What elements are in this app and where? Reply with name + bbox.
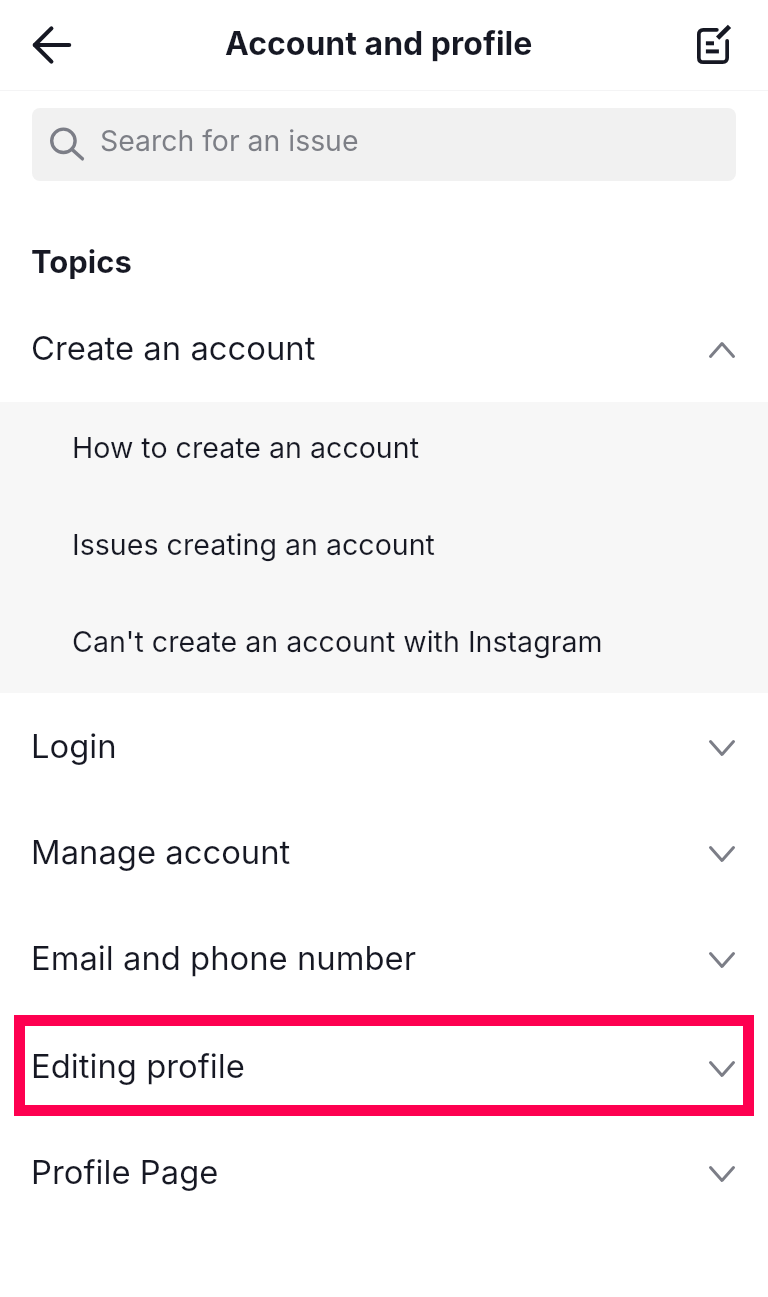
staticText: Create an account [31, 328, 316, 368]
button[interactable]: Email and phone number [0, 907, 768, 1014]
button[interactable]: Profile Page [0, 1121, 768, 1228]
button[interactable]: How to create an account [0, 402, 768, 499]
staticText: Login [31, 726, 117, 766]
staticText: Account and profile [225, 24, 533, 63]
staticText: Email and phone number [31, 938, 416, 978]
staticText: Topics [31, 243, 132, 281]
button[interactable]: Submit feedback [677, 9, 749, 81]
button[interactable]: Login [0, 693, 768, 800]
staticText: Can't create an account with Instagram [72, 624, 603, 659]
staticText: How to create an account [72, 430, 420, 465]
staticText: Editing profile [31, 1046, 245, 1086]
button[interactable]: Issues creating an account [0, 499, 768, 596]
button[interactable]: Back [14, 7, 90, 83]
staticText: Manage account [31, 832, 291, 872]
button[interactable]: Create an account [0, 295, 768, 402]
button[interactable]: Editing profile [25, 1026, 743, 1105]
button[interactable]: Manage account [0, 800, 768, 907]
button[interactable]: Search for an issue [32, 108, 736, 181]
staticText: Issues creating an account [72, 527, 435, 562]
button[interactable]: Can't create an account with Instagram [0, 596, 768, 693]
staticText: Search for an issue [100, 123, 359, 157]
staticText: Profile Page [31, 1152, 219, 1192]
